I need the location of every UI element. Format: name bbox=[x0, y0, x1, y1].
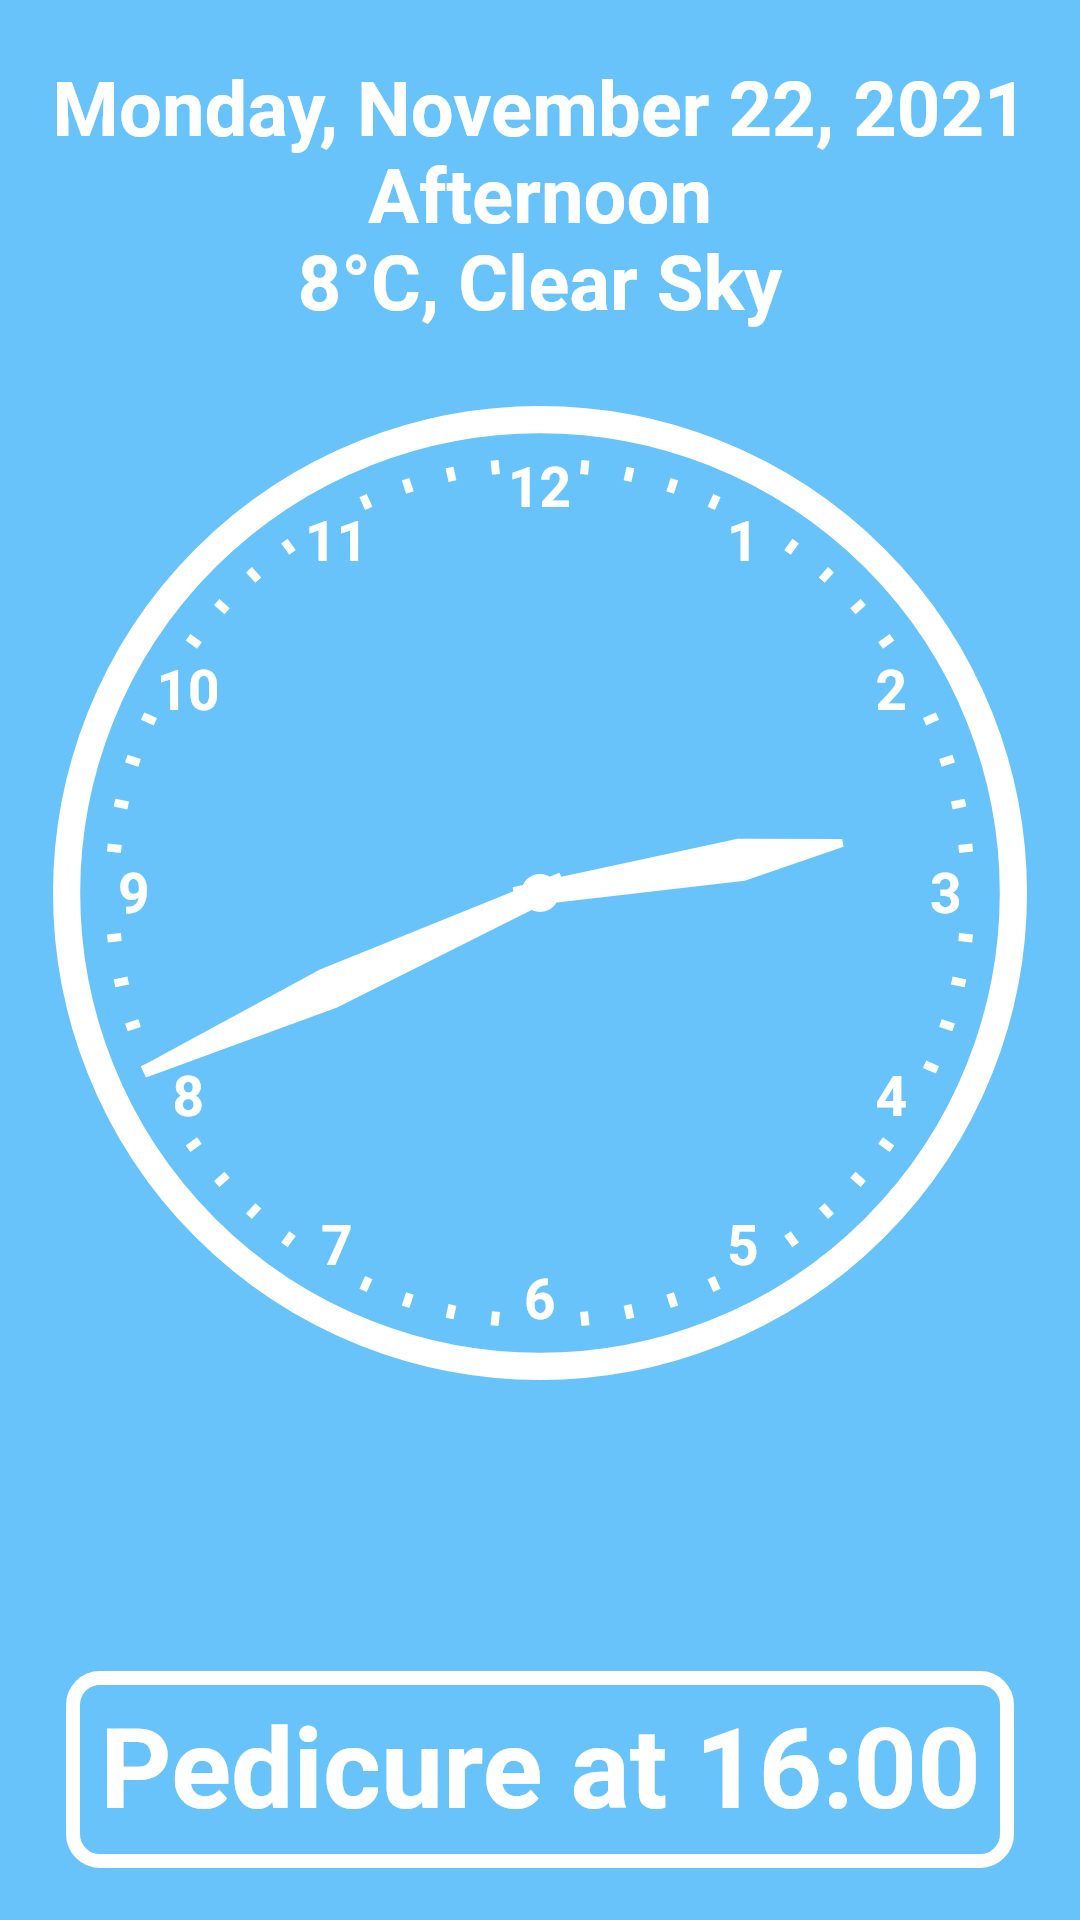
button[interactable]: Pedicure at 16:00 bbox=[66, 1671, 1014, 1868]
staticText: Monday, November 22, 2021 Afternoon 8°C,… bbox=[0, 65, 1080, 328]
staticText: Pedicure at 16:00 bbox=[100, 1705, 981, 1835]
other: Analog clock showing 2:41 bbox=[0, 0, 1080, 1920]
